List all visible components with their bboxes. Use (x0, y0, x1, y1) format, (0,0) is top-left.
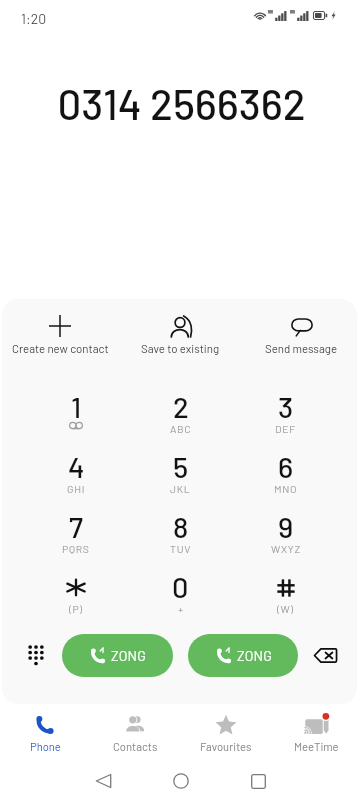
button[interactable]: 7 (24, 509, 128, 569)
button[interactable]: 3 (233, 389, 338, 449)
button[interactable]: Contacts (90, 704, 180, 760)
staticText: 2 (173, 389, 189, 420)
button[interactable]: 9 (233, 509, 338, 569)
staticText: 4 (68, 449, 85, 480)
button[interactable]: 8 (128, 509, 233, 569)
staticText: Send message (265, 341, 338, 355)
button[interactable]: 6 (233, 449, 338, 509)
button[interactable]: Phone (0, 704, 90, 760)
button[interactable]: 1 (24, 389, 128, 449)
button[interactable]: Save to existing (120, 309, 241, 359)
staticText: TUV (170, 542, 192, 555)
staticText: 0314 2566362 (57, 78, 306, 128)
staticText: 1:20 (21, 10, 47, 27)
button[interactable]: Send message (241, 309, 362, 359)
staticText: PQRS (62, 542, 90, 555)
staticText: Create new contact (12, 341, 109, 355)
staticText: (P) (69, 602, 83, 615)
staticText: Save to existing (141, 341, 220, 355)
button[interactable]: 2 (128, 389, 233, 449)
staticText: 9 (278, 509, 294, 540)
button[interactable]: 5 (128, 449, 233, 509)
staticText: MeeTime (294, 740, 339, 754)
staticText: ZONG (111, 647, 146, 664)
staticText: Favourites (200, 740, 252, 754)
button[interactable]: Recent apps (234, 757, 282, 800)
button[interactable]: 4 (24, 449, 128, 509)
staticText: 0 (172, 569, 189, 600)
button[interactable]: 0 (128, 569, 233, 629)
staticText: JKL (170, 482, 191, 495)
button[interactable]: (W) (233, 569, 338, 629)
staticText: + (178, 602, 184, 615)
button[interactable]: Favourites (180, 704, 271, 760)
staticText: 7 (69, 509, 83, 540)
staticText: ZONG (237, 647, 272, 664)
staticText: GHI (67, 482, 86, 495)
staticText: ABC (170, 422, 192, 435)
button[interactable]: ZONG (62, 634, 173, 677)
staticText: WXYZ (271, 542, 301, 555)
staticText: 5 (173, 449, 189, 480)
staticText: 8 (173, 509, 189, 540)
button[interactable]: Show dialpad (18, 637, 54, 673)
staticText: MNO (274, 482, 298, 495)
staticText: Contacts (113, 740, 158, 754)
button[interactable]: MeeTime (271, 704, 362, 760)
staticText: DEF (275, 422, 296, 435)
button[interactable]: ZONG (188, 634, 298, 677)
button[interactable]: Backspace (307, 637, 343, 673)
staticText: 6 (278, 449, 294, 480)
button[interactable]: Home (157, 757, 205, 800)
staticText: 3 (278, 389, 294, 420)
button[interactable]: Create new contact (0, 309, 120, 359)
button[interactable]: Back (79, 757, 127, 800)
staticText: 1 (71, 389, 82, 420)
button[interactable]: (P) (24, 569, 128, 629)
staticText: Phone (30, 740, 61, 754)
staticText: (W) (277, 602, 294, 615)
